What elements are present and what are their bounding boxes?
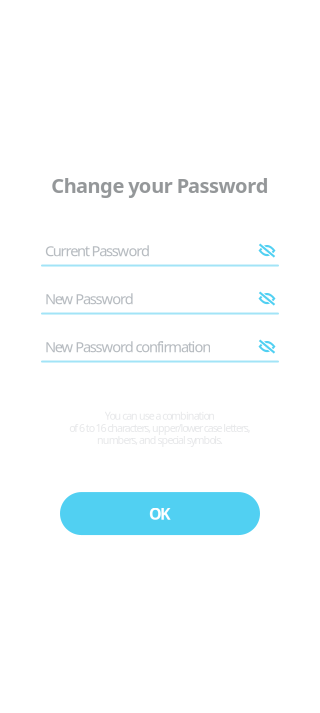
staticText: New Password confirmation: [45, 337, 211, 356]
staticText: New Password: [45, 289, 134, 308]
staticText: You can use a combination: [105, 409, 215, 423]
staticText: Current Password: [45, 241, 150, 260]
staticText: Change your Password: [51, 172, 269, 199]
button[interactable]: New Password confirmation: [41, 337, 255, 357]
button[interactable]: Show New Password: [255, 289, 279, 309]
button[interactable]: New Password: [41, 289, 255, 309]
staticText: OK: [149, 503, 171, 524]
staticText: numbers, and special symbols.: [97, 433, 223, 447]
button[interactable]: Current Password: [41, 241, 255, 261]
button[interactable]: Show Current Password: [255, 241, 279, 261]
button[interactable]: Show New Password confirmation: [255, 337, 279, 357]
button[interactable]: OK: [60, 492, 260, 535]
staticText: of 6 to 16 characters, upper/lower case …: [69, 421, 251, 435]
